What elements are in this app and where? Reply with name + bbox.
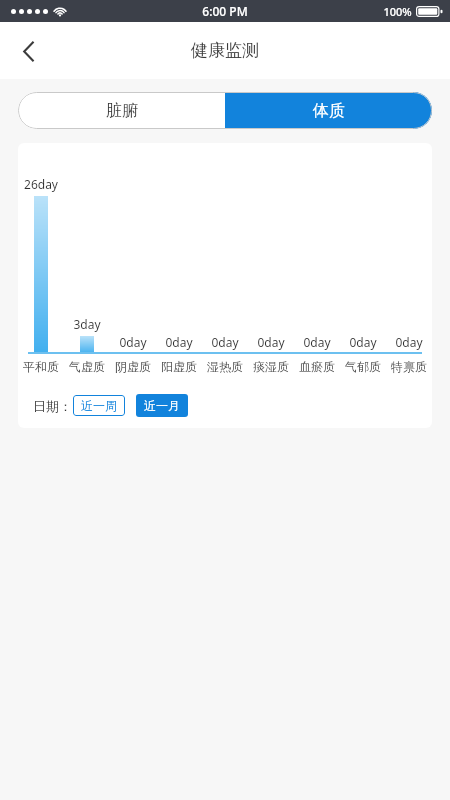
staticText: 0day bbox=[119, 334, 147, 350]
staticText: 湿热质 bbox=[207, 359, 243, 374]
button[interactable]: 近一周 bbox=[73, 395, 125, 416]
button[interactable]: 近一月 bbox=[136, 394, 188, 417]
staticText: 近一周 bbox=[81, 398, 117, 413]
staticText: 脏腑 bbox=[106, 101, 138, 121]
staticText: 0day bbox=[211, 334, 239, 350]
staticText: 6:00 PM bbox=[202, 3, 248, 19]
staticText: 0day bbox=[395, 334, 423, 350]
staticText: 体质 bbox=[313, 101, 345, 121]
staticText: 特禀质 bbox=[391, 359, 427, 374]
button[interactable]: 脏腑 bbox=[18, 92, 225, 129]
staticText: 日期： bbox=[33, 398, 72, 414]
staticText: 26day bbox=[24, 176, 58, 192]
staticText: 0day bbox=[257, 334, 285, 350]
staticText: 健康监测 bbox=[191, 40, 259, 61]
staticText: 平和质 bbox=[23, 359, 59, 374]
staticText: 阴虚质 bbox=[115, 359, 151, 374]
button[interactable]: 体质 bbox=[225, 92, 432, 129]
staticText: 0day bbox=[165, 334, 193, 350]
staticText: 气虚质 bbox=[69, 359, 105, 374]
button[interactable]: Back bbox=[6, 28, 52, 74]
staticText: 痰湿质 bbox=[253, 359, 289, 374]
staticText: 气郁质 bbox=[345, 359, 381, 374]
staticText: 近一月 bbox=[144, 398, 180, 413]
staticText: 3day bbox=[73, 316, 101, 332]
staticText: 阳虚质 bbox=[161, 359, 197, 374]
staticText: 血瘀质 bbox=[299, 359, 335, 374]
staticText: 0day bbox=[349, 334, 377, 350]
staticText: 100% bbox=[383, 4, 412, 19]
staticText: 0day bbox=[303, 334, 331, 350]
